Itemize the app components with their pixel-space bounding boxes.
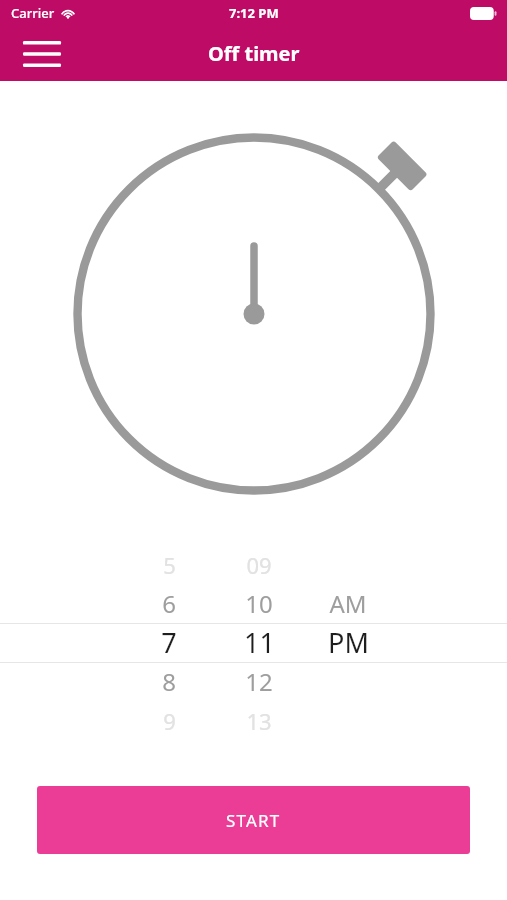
staticText: AM xyxy=(329,587,367,620)
staticText: Carrier xyxy=(11,4,55,22)
button[interactable]: Open navigation menu xyxy=(10,26,74,81)
staticText: 9 xyxy=(163,706,176,736)
staticText: START xyxy=(226,809,281,832)
button[interactable]: 8 xyxy=(0,662,507,701)
button[interactable]: START xyxy=(37,786,470,854)
staticText: 5 xyxy=(163,550,176,580)
button[interactable]: 7 xyxy=(0,623,507,662)
staticText: 8 xyxy=(162,665,176,698)
staticText: 13 xyxy=(246,706,272,736)
button[interactable]: 6 xyxy=(0,584,507,623)
staticText: 10 xyxy=(245,587,273,620)
staticText: 6 xyxy=(162,587,176,620)
staticText: 11 xyxy=(244,624,275,661)
staticText: 7 xyxy=(161,624,177,661)
staticText: PM xyxy=(328,624,369,661)
staticText: Off timer xyxy=(208,40,300,67)
staticText: 7:12 PM xyxy=(229,4,279,22)
staticText: 12 xyxy=(245,665,273,698)
staticText: 09 xyxy=(246,550,272,580)
